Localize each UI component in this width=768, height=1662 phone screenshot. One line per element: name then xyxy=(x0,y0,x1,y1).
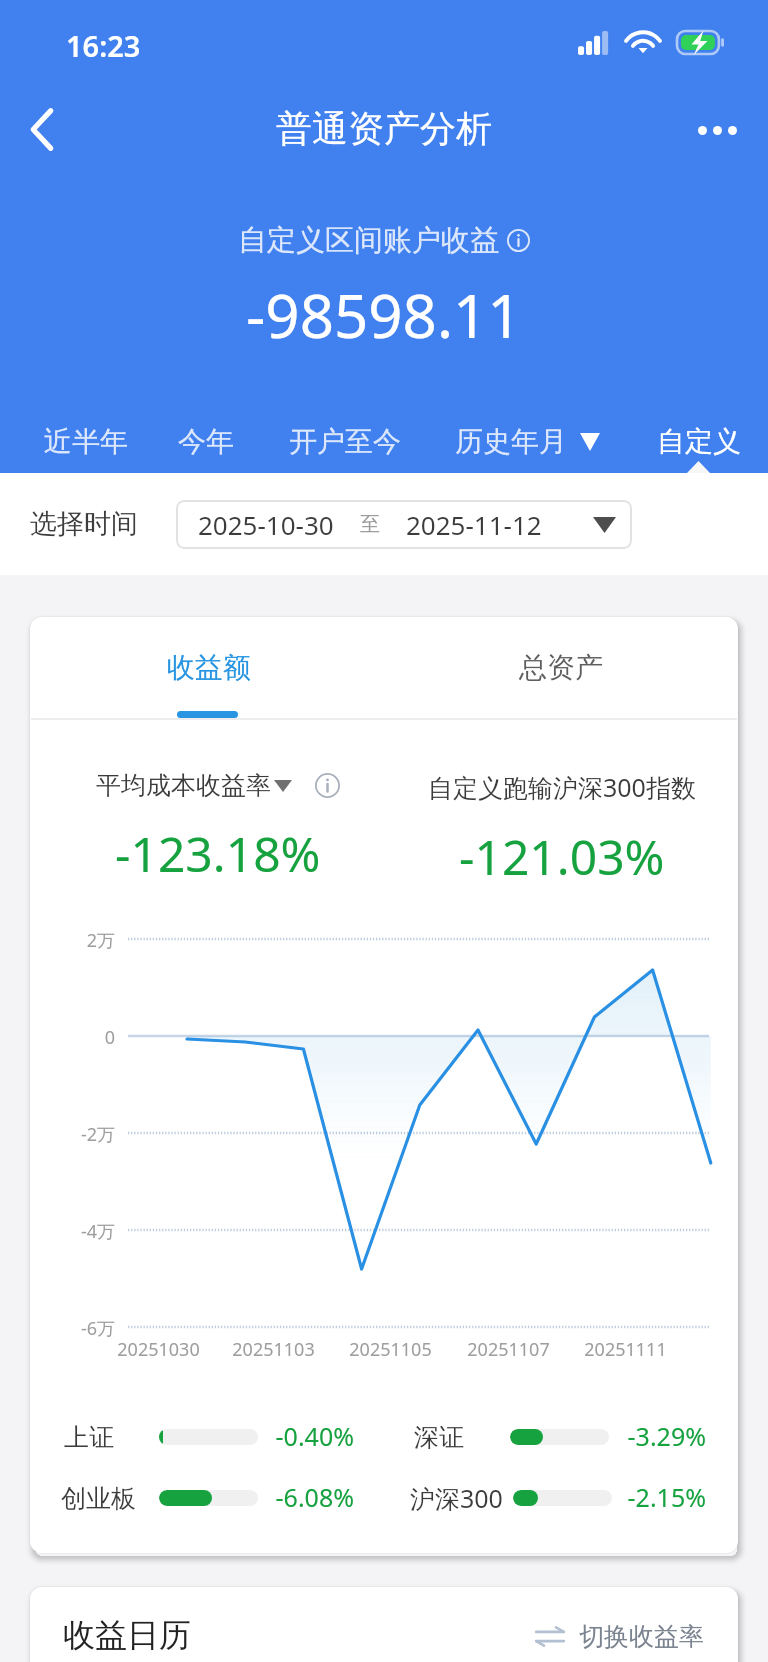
button[interactable]: 自定义 xyxy=(645,418,753,464)
staticText: -123.18% xyxy=(115,821,321,886)
staticText: 近半年 xyxy=(44,424,128,459)
staticText: 平均成本收益率 xyxy=(96,770,271,801)
staticText: -98598.11 xyxy=(246,274,522,356)
button[interactable]: 深证 xyxy=(408,1411,470,1463)
staticText: 20251107 xyxy=(467,1337,550,1362)
staticText: -6.08% xyxy=(275,1480,354,1514)
staticText: 自定义区间账户收益 xyxy=(238,222,499,259)
button[interactable]: 今年 xyxy=(166,418,246,464)
staticText: 普通资产分析 xyxy=(276,106,492,151)
staticText: -4万 xyxy=(80,1219,115,1244)
staticText: 收益额 xyxy=(167,650,251,685)
staticText: 自定义跑输沪深300指数 xyxy=(428,770,696,804)
staticText: 创业板 xyxy=(61,1483,136,1514)
staticText: 切换收益率 xyxy=(579,1621,704,1652)
staticText: 今年 xyxy=(178,424,234,459)
button[interactable]: 创业板 xyxy=(55,1472,142,1524)
button[interactable]: 平均成本收益率 xyxy=(96,770,292,801)
staticText: 20251103 xyxy=(232,1337,315,1362)
staticText: 至 xyxy=(360,512,380,537)
staticText: -0.40% xyxy=(275,1419,354,1453)
staticText: -2.15% xyxy=(627,1480,706,1514)
button[interactable]: 2025-10-30 xyxy=(176,500,632,549)
button[interactable]: 总资产 xyxy=(454,621,667,713)
staticText: 开户至今 xyxy=(289,424,401,459)
staticText: -3.29% xyxy=(627,1419,706,1453)
staticText: 0 xyxy=(104,1025,115,1050)
staticText: 收益日历 xyxy=(63,1615,191,1655)
staticText: 2025-10-30 xyxy=(198,507,334,542)
staticText: 沪深300 xyxy=(410,1481,503,1515)
staticText: -121.03% xyxy=(459,824,665,889)
staticText: 20251111 xyxy=(584,1337,667,1362)
staticText: 2025-11-12 xyxy=(406,507,542,542)
staticText: 自定义 xyxy=(657,424,741,459)
button[interactable]: 沪深300 xyxy=(404,1472,509,1524)
staticText: -2万 xyxy=(80,1122,115,1147)
button[interactable]: 历史年月 xyxy=(442,418,613,464)
staticText: 历史年月 xyxy=(455,424,567,459)
staticText: 总资产 xyxy=(519,650,603,685)
staticText: 上证 xyxy=(64,1422,114,1453)
button[interactable]: More options xyxy=(684,97,750,163)
staticText: 2万 xyxy=(86,928,115,953)
button[interactable]: Back xyxy=(9,96,75,162)
button[interactable]: 开户至今 xyxy=(277,418,413,464)
staticText: 选择时间 xyxy=(30,507,138,541)
staticText: 16:23 xyxy=(66,26,141,65)
staticText: -6万 xyxy=(80,1316,115,1341)
staticText: 深证 xyxy=(414,1422,464,1453)
staticText: 20251030 xyxy=(117,1337,200,1362)
button[interactable]: 近半年 xyxy=(32,418,140,464)
button[interactable]: 切换收益率 xyxy=(531,1611,708,1662)
button[interactable]: 收益额 xyxy=(102,621,315,713)
button[interactable]: 上证 xyxy=(58,1411,120,1463)
staticText: 20251105 xyxy=(349,1337,432,1362)
